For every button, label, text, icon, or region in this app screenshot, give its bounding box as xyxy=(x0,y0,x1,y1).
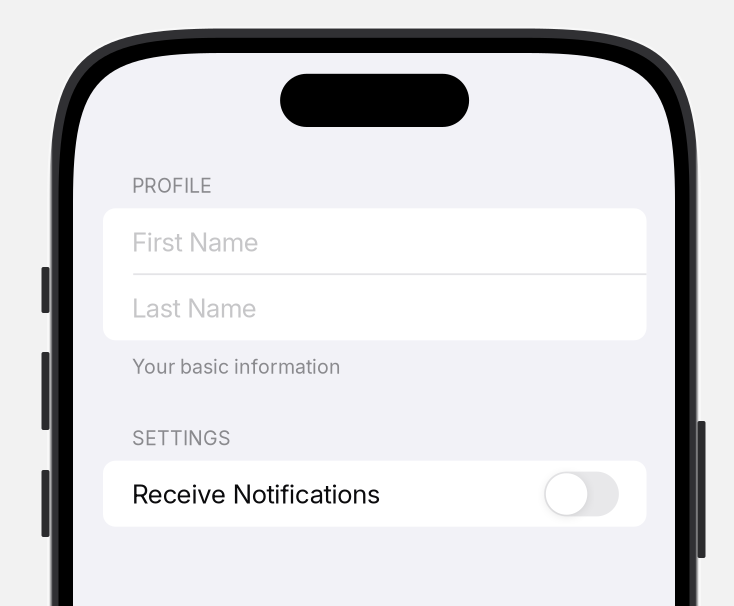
staticText: Your basic information xyxy=(132,355,341,378)
button[interactable]: Volume up xyxy=(41,352,49,430)
staticText: Last Name xyxy=(132,292,257,324)
button[interactable]: Action button xyxy=(41,267,49,313)
staticText: SETTINGS xyxy=(132,426,231,450)
button[interactable]: Receive Notifications xyxy=(103,461,646,527)
staticText: Receive Notifications xyxy=(132,478,380,510)
staticText: PROFILE xyxy=(132,174,212,197)
button[interactable]: Volume down xyxy=(41,470,49,537)
staticText: First Name xyxy=(132,226,259,258)
button[interactable]: Side button xyxy=(697,421,705,558)
button[interactable]: Last Name xyxy=(103,275,646,341)
button[interactable]: First Name xyxy=(103,209,646,275)
